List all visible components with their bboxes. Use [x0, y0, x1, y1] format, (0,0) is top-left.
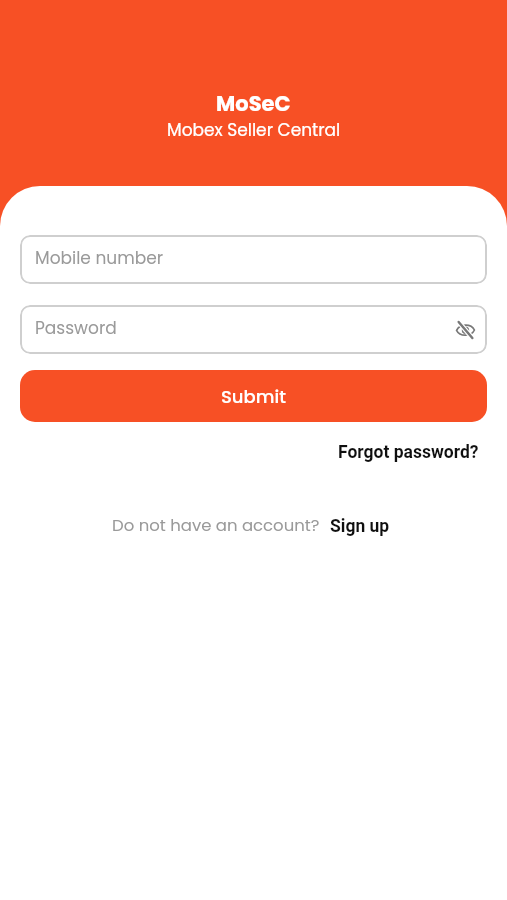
button[interactable]: Show password	[447, 312, 483, 348]
staticText: Sign up	[330, 516, 390, 537]
staticText: Do not have an account?	[112, 514, 320, 537]
button[interactable]: Submit	[20, 370, 487, 422]
staticText: MoSeC	[216, 89, 291, 118]
staticText: Submit	[221, 384, 286, 409]
button[interactable]: Forgot password?	[338, 442, 479, 463]
staticText: Mobex Seller Central	[167, 118, 341, 142]
button[interactable]: Sign up	[330, 516, 390, 537]
button[interactable]: Password	[20, 305, 487, 354]
staticText: Forgot password?	[338, 442, 479, 463]
staticText: Password	[35, 316, 117, 340]
button[interactable]: Mobile number	[20, 235, 487, 284]
staticText: Mobile number	[35, 246, 164, 270]
